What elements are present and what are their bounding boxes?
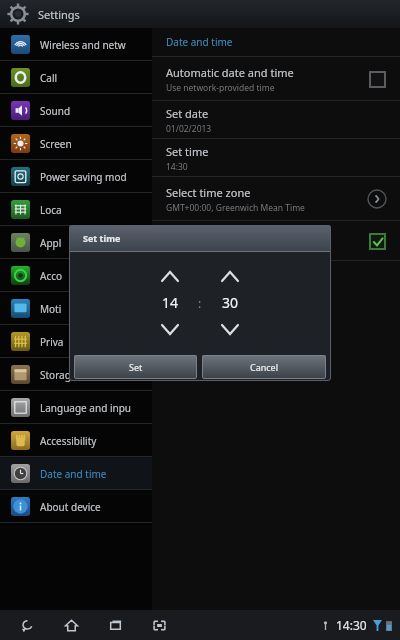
button[interactable]: Priva bbox=[0, 325, 152, 358]
button[interactable]: Set bbox=[74, 355, 197, 379]
staticText: 14 bbox=[162, 293, 179, 312]
staticText: Accessibility bbox=[40, 434, 97, 448]
button[interactable]: Date and time bbox=[0, 457, 152, 490]
button[interactable]: Cancel bbox=[202, 355, 326, 379]
button[interactable]: Call bbox=[0, 61, 152, 94]
staticText: GMT+00:00, Greenwich Mean Time bbox=[166, 202, 305, 214]
staticText: Set time bbox=[166, 144, 209, 159]
button[interactable]: Home bbox=[58, 612, 84, 638]
staticText: Loca bbox=[40, 203, 62, 217]
staticText: Power saving mod bbox=[40, 170, 127, 184]
staticText: Set time bbox=[83, 232, 121, 244]
staticText: Language and inpu bbox=[40, 401, 131, 415]
button[interactable]: Moti bbox=[0, 292, 152, 325]
staticText: About device bbox=[40, 500, 101, 514]
staticText: Set bbox=[129, 361, 143, 373]
staticText: Date and time bbox=[166, 35, 233, 49]
staticText: Priva bbox=[40, 335, 64, 349]
button[interactable]: Accessibility bbox=[0, 424, 152, 457]
staticText: Set date bbox=[166, 106, 209, 121]
button[interactable]: Acco bbox=[0, 259, 152, 292]
button[interactable]: Decrease bbox=[213, 319, 247, 339]
staticText: 14:30 bbox=[166, 161, 188, 173]
staticText: : bbox=[198, 295, 202, 311]
button[interactable]: Automatic date and time bbox=[152, 57, 400, 101]
button[interactable]: Set time bbox=[152, 139, 400, 177]
button[interactable]: Appl bbox=[0, 226, 152, 259]
staticText: 30 bbox=[222, 293, 239, 312]
staticText: Sound bbox=[40, 104, 71, 118]
button[interactable]: Increase bbox=[153, 266, 187, 286]
staticText: Use network-provided time bbox=[166, 82, 275, 94]
staticText: Automatic date and time bbox=[166, 65, 294, 80]
staticText: Select time zone bbox=[166, 185, 251, 200]
button[interactable]: Wireless and netw bbox=[0, 28, 152, 61]
button[interactable]: Use 24-hour format bbox=[152, 221, 400, 261]
button[interactable]: Screen bbox=[0, 127, 152, 160]
button[interactable]: Decrease bbox=[153, 319, 187, 339]
staticText: Date and time bbox=[40, 467, 107, 481]
button[interactable]: Back bbox=[14, 612, 40, 638]
button[interactable]: About device bbox=[0, 490, 152, 523]
button[interactable]: Loca bbox=[0, 193, 152, 226]
button[interactable]: Recents bbox=[102, 612, 128, 638]
staticText: Storage bbox=[40, 368, 77, 382]
staticText: Appl bbox=[40, 236, 62, 250]
staticText: Moti bbox=[40, 302, 62, 316]
button[interactable]: Storage bbox=[0, 358, 152, 391]
button[interactable]: Power saving mod bbox=[0, 160, 152, 193]
button[interactable]: Sound bbox=[0, 94, 152, 127]
button[interactable]: Language and inpu bbox=[0, 391, 152, 424]
button[interactable]: Increase bbox=[213, 266, 247, 286]
staticText: Use 24-hour format bbox=[166, 234, 268, 249]
staticText: 01/02/2013 bbox=[166, 123, 212, 135]
staticText: Screen bbox=[40, 137, 72, 151]
button[interactable]: Set date bbox=[152, 101, 400, 139]
button[interactable]: Select time zone bbox=[152, 177, 400, 221]
staticText: Wireless and netw bbox=[40, 38, 126, 52]
staticText: Settings bbox=[38, 7, 80, 22]
staticText: 14:30 bbox=[336, 617, 367, 633]
staticText: Cancel bbox=[250, 361, 279, 373]
staticText: Acco bbox=[40, 269, 63, 283]
button[interactable]: Screenshot bbox=[146, 612, 172, 638]
staticText: Call bbox=[40, 71, 58, 85]
